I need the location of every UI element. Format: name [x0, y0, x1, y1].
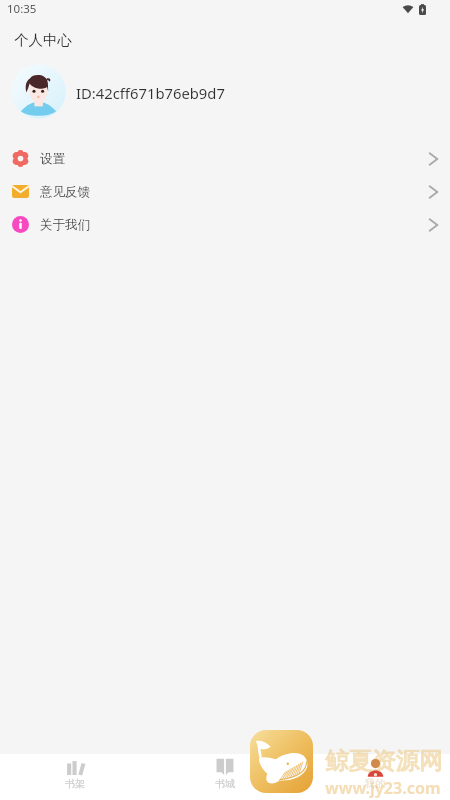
staticText: 鲸夏资源网 — [325, 746, 443, 776]
button[interactable]: 书城 — [150, 758, 300, 797]
staticText: ID:42cff671b76eb9d7 — [76, 83, 225, 103]
staticText: 意见反馈 — [40, 184, 90, 200]
staticText: 设置 — [40, 151, 65, 167]
staticText: 我的 — [365, 777, 385, 790]
button[interactable]: 我的 — [300, 758, 450, 797]
staticText: 书架 — [65, 777, 85, 790]
staticText: 关于我们 — [40, 217, 90, 233]
button[interactable]: 设置 — [0, 142, 450, 175]
button[interactable]: 书架 — [0, 758, 150, 797]
staticText: 个人中心 — [14, 31, 72, 49]
button[interactable]: 意见反馈 — [0, 175, 450, 208]
staticText: 10:35 — [7, 1, 37, 17]
staticText: www.jy23.com — [325, 777, 441, 799]
staticText: 书城 — [215, 777, 235, 790]
button[interactable]: 关于我们 — [0, 208, 450, 241]
button[interactable]: 用户信息 — [0, 58, 450, 124]
